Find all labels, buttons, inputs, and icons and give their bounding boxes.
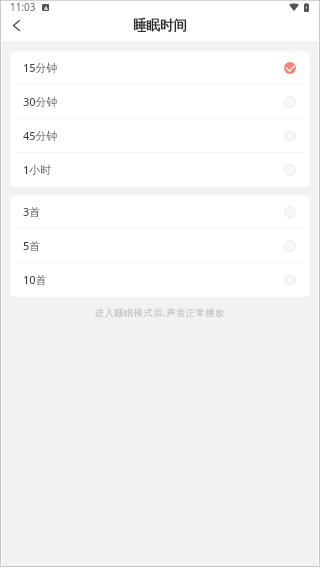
staticText: 进入睡眠模式后,声音正常播放: [0, 306, 320, 318]
staticText: 11:03: [10, 0, 36, 14]
button[interactable]: 5首: [10, 229, 310, 263]
button[interactable]: 10首: [10, 263, 310, 297]
staticText: 5首: [23, 238, 41, 253]
staticText: 睡眠时间: [133, 17, 187, 34]
staticText: 30分钟: [23, 94, 58, 109]
button[interactable]: 15分钟: [10, 51, 310, 85]
button[interactable]: 3首: [10, 195, 310, 229]
button[interactable]: 45分钟: [10, 119, 310, 153]
button[interactable]: Back: [1, 12, 31, 38]
staticText: 3首: [23, 204, 41, 219]
staticText: 10首: [23, 272, 47, 287]
button[interactable]: 1小时: [10, 153, 310, 187]
staticText: 1小时: [23, 162, 52, 177]
button[interactable]: 30分钟: [10, 85, 310, 119]
staticText: 15分钟: [23, 60, 58, 75]
staticText: 45分钟: [23, 128, 58, 143]
